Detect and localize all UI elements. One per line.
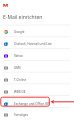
staticText: Google (14, 30, 25, 34)
button[interactable]: Exchange und Office 365 (0, 98, 74, 110)
button[interactable]: Yahoo (0, 50, 74, 62)
button[interactable]: Outlook, Hotmail und Live (0, 38, 74, 50)
staticText: E-Mail einrichten (3, 14, 43, 21)
staticText: Sonstiges (14, 113, 29, 117)
staticText: GMX (14, 66, 21, 70)
staticText: WEB.DE (14, 90, 26, 94)
button[interactable]: Sonstiges (0, 110, 74, 120)
button[interactable]: T-Online (0, 74, 74, 86)
button[interactable]: GMX (0, 62, 74, 74)
staticText: Exchange und Office 365 (14, 102, 51, 106)
staticText: Yahoo (14, 54, 23, 58)
staticText: Outlook, Hotmail und Live (14, 42, 52, 46)
staticText: T-Online (14, 78, 27, 82)
button[interactable]: WEB.DE (0, 86, 74, 98)
button[interactable]: Google (0, 26, 74, 38)
